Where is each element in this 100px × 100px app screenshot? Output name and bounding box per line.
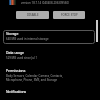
staticText: Body Sensors, Calendar, Camera, Contacts… bbox=[6, 74, 63, 78]
staticText: Data usage bbox=[6, 50, 25, 55]
button[interactable]: FORCE STOP bbox=[53, 11, 85, 19]
staticText: Storage bbox=[6, 31, 19, 36]
staticText: version 18.7.14 (040408-206309560) bbox=[21, 1, 69, 5]
staticText: 640 MB used in internal storage bbox=[6, 37, 49, 41]
button[interactable]: Permissions bbox=[3, 67, 95, 82]
staticText: FORCE STOP bbox=[61, 13, 78, 17]
button[interactable]: DISABLE bbox=[16, 11, 49, 19]
staticText: Permissions bbox=[6, 68, 26, 73]
staticText: DISABLE bbox=[27, 13, 39, 17]
button[interactable]: Storage bbox=[3, 30, 95, 44]
staticText: Microphone, Phone, SMS, and Storage bbox=[6, 78, 58, 82]
button[interactable]: Notifications bbox=[3, 88, 95, 95]
staticText: 529 MB used since Jul 1 bbox=[6, 56, 38, 60]
staticText: Notifications bbox=[6, 89, 27, 94]
button[interactable]: Data usage bbox=[3, 49, 95, 60]
